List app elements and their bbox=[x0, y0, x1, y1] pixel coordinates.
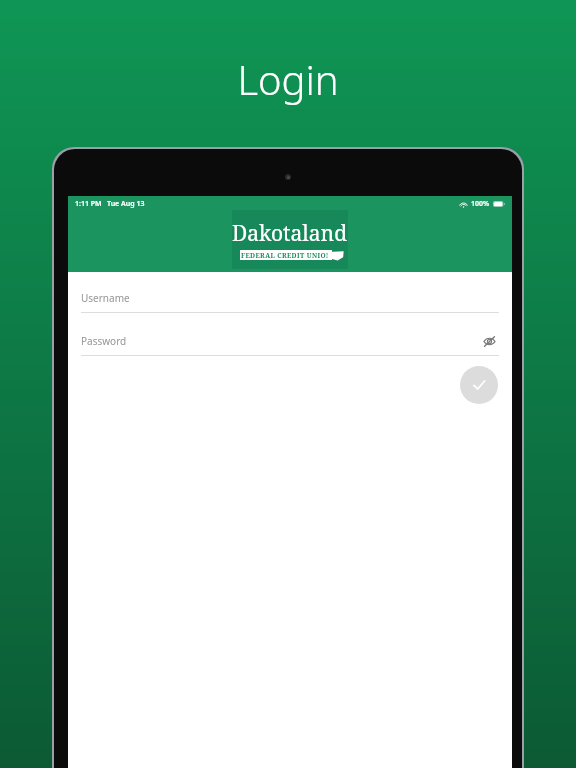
staticText: 100% bbox=[471, 199, 490, 209]
button[interactable]: Password bbox=[81, 327, 499, 356]
button[interactable]: Submit login bbox=[460, 366, 498, 404]
staticText: FEDERAL CREDIT UNION bbox=[241, 251, 332, 260]
staticText: Login bbox=[0, 52, 576, 106]
staticText: 1:11 PM bbox=[75, 199, 102, 209]
staticText: Tue Aug 13 bbox=[107, 199, 145, 209]
staticText: Password bbox=[81, 334, 127, 348]
button[interactable]: Show password bbox=[479, 331, 499, 351]
button[interactable]: Username bbox=[81, 284, 499, 313]
staticText: Dakotaland bbox=[232, 219, 348, 248]
staticText: Username bbox=[81, 291, 130, 305]
